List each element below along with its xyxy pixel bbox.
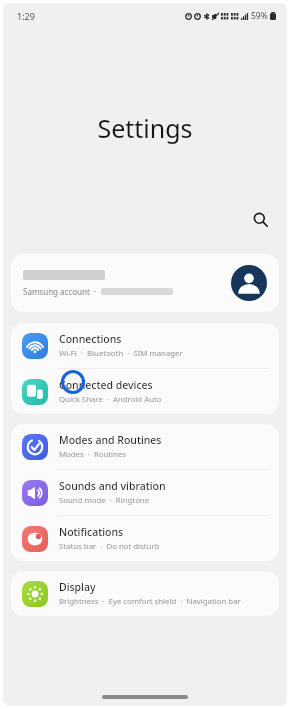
staticText: Modes · Routines [59, 449, 127, 460]
button[interactable]: Connections [11, 323, 279, 368]
staticText: Sounds and vibration [59, 479, 166, 493]
staticText: Settings [3, 111, 287, 145]
staticText: 1:29 [17, 10, 35, 22]
staticText: Modes and Routines [59, 433, 162, 447]
button[interactable]: Samsung account · [11, 254, 279, 312]
button[interactable]: Display [11, 571, 279, 616]
staticText: Wi-Fi · Bluetooth · SIM manager [59, 348, 183, 359]
staticText: Status bar · Do not disturb [59, 541, 160, 552]
button[interactable]: Connected devices [11, 369, 279, 414]
staticText: 59% [251, 10, 268, 22]
button[interactable]: Search [247, 206, 273, 232]
button[interactable]: Modes and Routines [11, 424, 279, 469]
button[interactable]: Sounds and vibration [11, 470, 279, 515]
staticText: Quick Share · Android Auto [59, 394, 162, 405]
staticText: Samsung account · [23, 286, 101, 297]
staticText: Display [59, 580, 96, 594]
staticText: Sound mode · Ringtone [59, 495, 150, 506]
staticText: Brightness · Eye comfort shield · Naviga… [59, 596, 241, 607]
staticText: Connected devices [59, 378, 153, 392]
staticText: Connections [59, 332, 122, 346]
staticText: Notifications [59, 525, 124, 539]
button[interactable]: Notifications [11, 516, 279, 561]
